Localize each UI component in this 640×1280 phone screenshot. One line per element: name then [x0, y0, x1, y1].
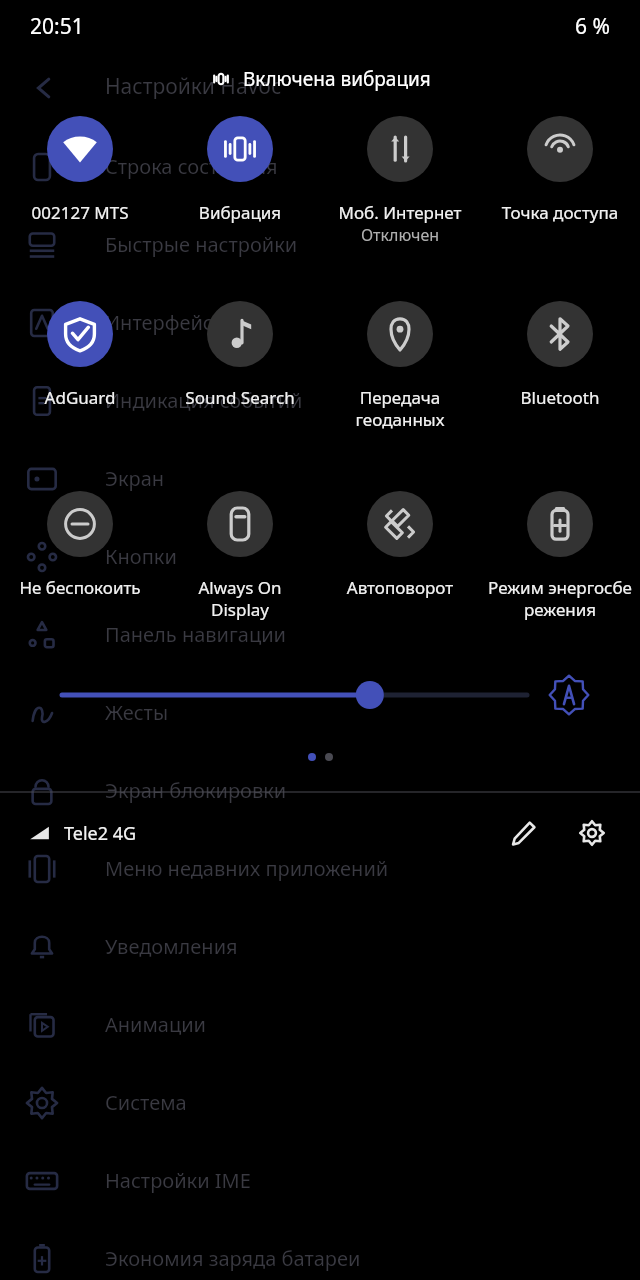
staticText: Настройки Havoc: [105, 72, 282, 101]
button[interactable]: Точка доступа: [480, 110, 640, 295]
staticText: Экран: [105, 465, 165, 492]
staticText: Включена вибрация: [243, 66, 431, 92]
staticText: Быстрые настройки: [105, 231, 298, 258]
button[interactable]: Передача геоданных: [320, 295, 480, 485]
staticText: Строка состояния: [105, 153, 278, 180]
staticText: Bluetooth: [482, 386, 638, 409]
button[interactable]: Вибрация: [160, 110, 320, 295]
button[interactable]: Автоповорот: [320, 485, 480, 675]
staticText: Настройки IME: [105, 1167, 251, 1194]
button[interactable]: Не беспокоить: [0, 485, 160, 675]
staticText: Меню недавних приложений: [105, 855, 389, 882]
button[interactable]: Auto brightness: [545, 671, 593, 719]
button[interactable]: Режим энергосбе режения: [480, 485, 640, 675]
button[interactable]: Моб. Интернет: [320, 110, 480, 295]
staticText: Экономия заряда батареи: [105, 1245, 361, 1272]
staticText: Tele2 4G: [64, 821, 137, 846]
staticText: Sound Search: [162, 386, 318, 409]
staticText: Жесты: [105, 699, 169, 726]
staticText: 002127 MTS: [2, 201, 158, 224]
staticText: 6 %: [575, 12, 610, 41]
staticText: Панель навигации: [105, 621, 286, 648]
staticText: Анимации: [105, 1011, 207, 1038]
staticText: Режим энергосбе режения: [482, 576, 638, 621]
staticText: Передача геоданных: [322, 386, 478, 431]
button[interactable]: AdGuard: [0, 295, 160, 485]
button[interactable]: Settings: [572, 813, 612, 853]
staticText: AdGuard: [2, 386, 158, 409]
staticText: Моб. Интернет: [322, 201, 478, 224]
button[interactable]: Bluetooth: [480, 295, 640, 485]
staticText: Интерфейс: [105, 309, 213, 336]
button[interactable]: Sound Search: [160, 295, 320, 485]
staticText: Уведомления: [105, 933, 238, 960]
staticText: Кнопки: [105, 543, 177, 570]
button[interactable]: Edit: [504, 813, 544, 853]
staticText: Вибрация: [162, 201, 318, 224]
staticText: Always On Display: [162, 576, 318, 621]
staticText: Не беспокоить: [2, 576, 158, 599]
staticText: Автоповорот: [322, 576, 478, 599]
staticText: 20:51: [30, 12, 84, 41]
staticText: Точка доступа: [482, 201, 638, 224]
staticText: Экран блокировки: [105, 777, 287, 804]
staticText: Индикация событий: [105, 387, 303, 414]
staticText: Система: [105, 1089, 187, 1116]
button[interactable]: 002127 MTS: [0, 110, 160, 295]
button[interactable]: Always On Display: [160, 485, 320, 675]
staticText: Отключен: [320, 224, 480, 246]
